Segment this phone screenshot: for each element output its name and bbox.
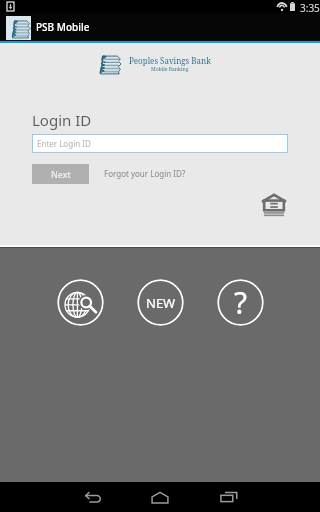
button[interactable]: Next	[32, 164, 89, 184]
staticText: Forgot your Login ID?	[104, 168, 186, 179]
staticText: PSB Mobile	[36, 20, 90, 34]
button[interactable]: Recent apps	[205, 482, 252, 512]
button[interactable]: Enter Login ID	[32, 134, 288, 153]
button[interactable]: NEW	[137, 279, 184, 326]
staticText: Enter Login ID	[37, 138, 91, 149]
staticText: Login ID	[32, 110, 92, 130]
staticText: 3:35	[300, 1, 320, 14]
staticText: Next	[51, 168, 71, 180]
button[interactable]: Home	[136, 482, 183, 512]
staticText: ?	[234, 282, 248, 323]
staticText: NEW	[146, 294, 176, 312]
button[interactable]: Find a location	[57, 279, 104, 326]
button[interactable]: Forgot your Login ID?	[104, 168, 186, 179]
staticText: Peoples Savings Bank	[129, 55, 211, 66]
button[interactable]: Back	[69, 482, 116, 512]
staticText: Mobile Banking	[151, 66, 189, 73]
button[interactable]: Help	[217, 279, 264, 326]
